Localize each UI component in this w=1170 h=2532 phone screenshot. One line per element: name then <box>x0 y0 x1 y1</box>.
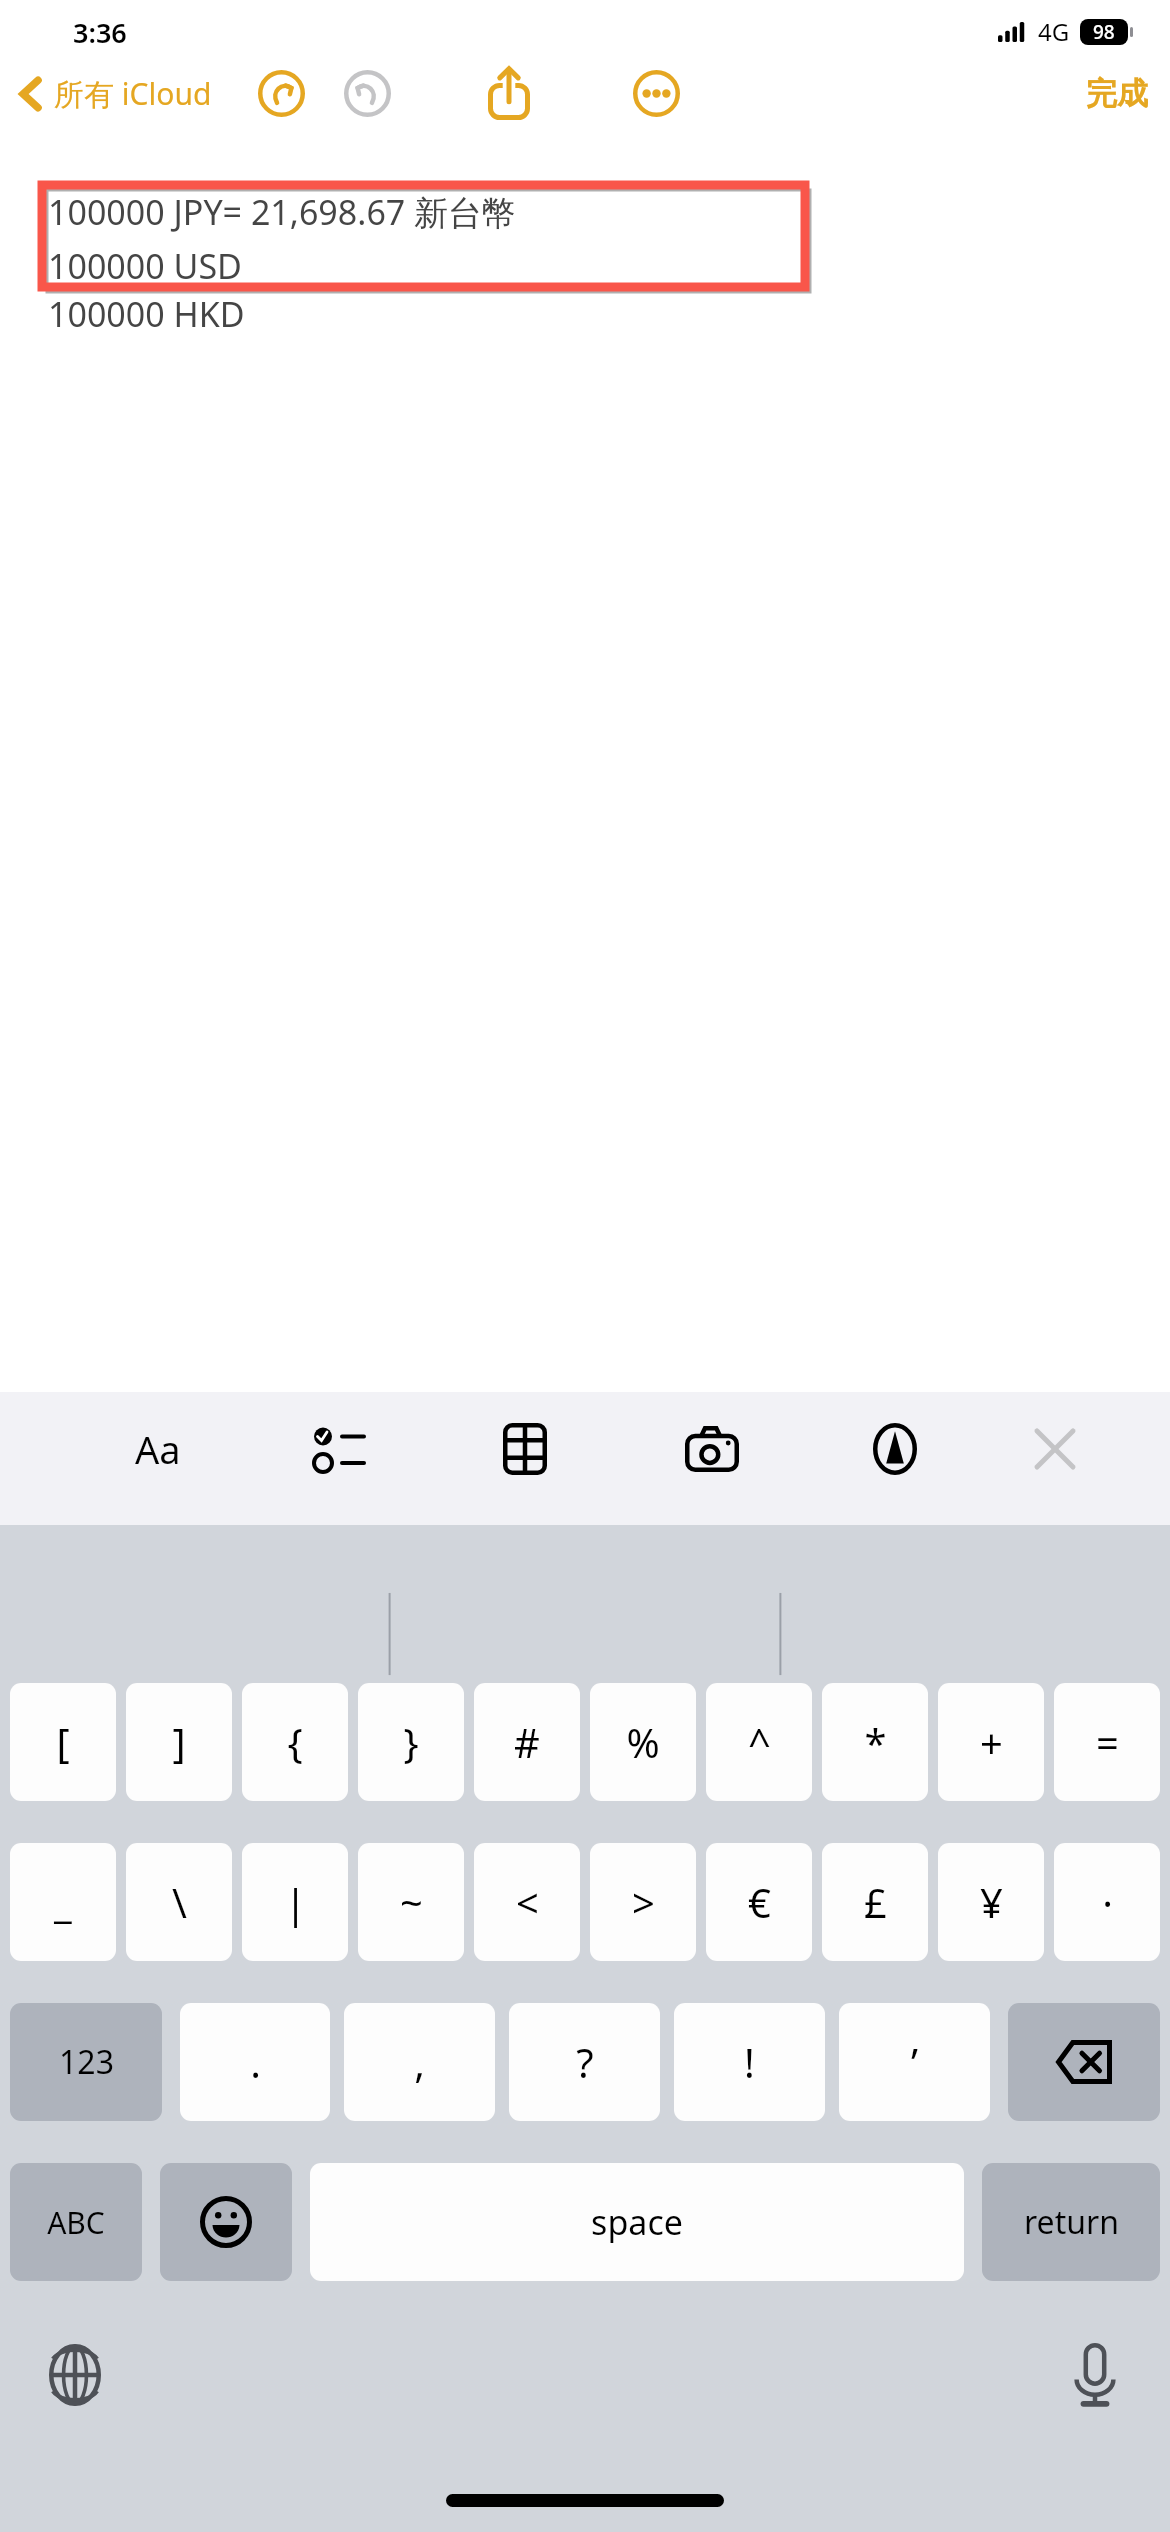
staticText: 98 <box>1093 19 1115 45</box>
button[interactable]: Undo <box>254 66 308 120</box>
button[interactable]: = <box>1054 1683 1160 1801</box>
staticText: % <box>626 1715 660 1769</box>
staticText: } <box>403 1715 419 1769</box>
staticText: 100000 USD <box>48 243 242 289</box>
button[interactable]: Redo <box>340 66 394 120</box>
staticText: ’ <box>911 2035 918 2089</box>
button[interactable]: Markup <box>857 1411 933 1487</box>
button[interactable]: Dictate <box>1060 2340 1130 2410</box>
button[interactable]: Close <box>1017 1411 1093 1487</box>
staticText: > <box>632 1875 655 1929</box>
button[interactable]: £ <box>822 1843 928 1961</box>
staticText: 100000 HKD <box>48 291 245 337</box>
button[interactable]: Camera <box>674 1411 750 1487</box>
button[interactable]: ^ <box>706 1683 812 1801</box>
staticText: * <box>864 1715 887 1769</box>
staticText: space <box>591 2199 683 2245</box>
staticText: = <box>1096 1715 1119 1769</box>
button[interactable]: ~ <box>358 1843 464 1961</box>
button[interactable]: ] <box>126 1683 232 1801</box>
staticText: Aa <box>135 1423 181 1475</box>
staticText: + <box>980 1715 1003 1769</box>
staticText: 完成 <box>1086 74 1148 113</box>
button[interactable]: € <box>706 1843 812 1961</box>
button[interactable]: | <box>242 1843 348 1961</box>
staticText: | <box>284 1875 307 1929</box>
button[interactable]: Format <box>120 1411 196 1487</box>
button[interactable]: Checklist <box>302 1411 378 1487</box>
staticText: 所有 iCloud <box>54 73 212 114</box>
button[interactable]: return <box>982 2163 1160 2281</box>
button[interactable]: Table <box>487 1411 563 1487</box>
staticText: [ <box>56 1715 70 1769</box>
button[interactable]: ¥ <box>938 1843 1044 1961</box>
staticText: return <box>1024 2200 1119 2244</box>
button[interactable]: Emoji <box>160 2163 292 2281</box>
staticText: # <box>514 1715 540 1769</box>
button[interactable]: > <box>590 1843 696 1961</box>
staticText: , <box>414 2035 425 2089</box>
button[interactable]: 123 <box>10 2003 162 2121</box>
button[interactable]: ABC <box>10 2163 142 2281</box>
button[interactable]: Switch keyboard <box>40 2340 110 2410</box>
button[interactable]: space <box>310 2163 964 2281</box>
button[interactable]: # <box>474 1683 580 1801</box>
staticText: ! <box>744 2035 755 2089</box>
staticText: 3:36 <box>73 14 127 51</box>
button[interactable]: 完成 <box>1064 66 1170 121</box>
button[interactable]: · <box>1054 1843 1160 1961</box>
staticText: · <box>1102 1875 1113 1929</box>
button[interactable]: Share <box>480 64 538 122</box>
button[interactable]: ! <box>674 2003 825 2121</box>
button[interactable]: , <box>344 2003 495 2121</box>
staticText: 4G <box>1038 15 1070 48</box>
button[interactable]: ? <box>509 2003 660 2121</box>
staticText: ? <box>576 2035 594 2089</box>
staticText: { <box>287 1715 303 1769</box>
staticText: ABC <box>47 2202 105 2243</box>
staticText: _ <box>54 1875 72 1929</box>
button[interactable]: More <box>628 65 684 121</box>
staticText: . <box>250 2035 261 2089</box>
button[interactable]: \ <box>126 1843 232 1961</box>
staticText: ¥ <box>980 1875 1003 1929</box>
staticText: € <box>748 1875 771 1929</box>
button[interactable]: % <box>590 1683 696 1801</box>
staticText: £ <box>864 1875 887 1929</box>
button[interactable]: 所有 iCloud <box>0 67 220 120</box>
staticText: \ <box>172 1875 187 1929</box>
button[interactable]: . <box>180 2003 330 2121</box>
button[interactable]: < <box>474 1843 580 1961</box>
staticText: ~ <box>400 1875 423 1929</box>
staticText: ] <box>172 1715 186 1769</box>
staticText: < <box>516 1875 539 1929</box>
staticText: ^ <box>748 1715 771 1769</box>
button[interactable]: { <box>242 1683 348 1801</box>
button[interactable]: _ <box>10 1843 116 1961</box>
staticText: 123 <box>59 2040 114 2084</box>
button[interactable]: * <box>822 1683 928 1801</box>
button[interactable]: } <box>358 1683 464 1801</box>
button[interactable]: Delete <box>1008 2003 1160 2121</box>
button[interactable]: + <box>938 1683 1044 1801</box>
staticText: 100000 JPY= 21,698.67 新台幣 <box>48 189 517 235</box>
button[interactable]: [ <box>10 1683 116 1801</box>
button[interactable]: ’ <box>839 2003 990 2121</box>
